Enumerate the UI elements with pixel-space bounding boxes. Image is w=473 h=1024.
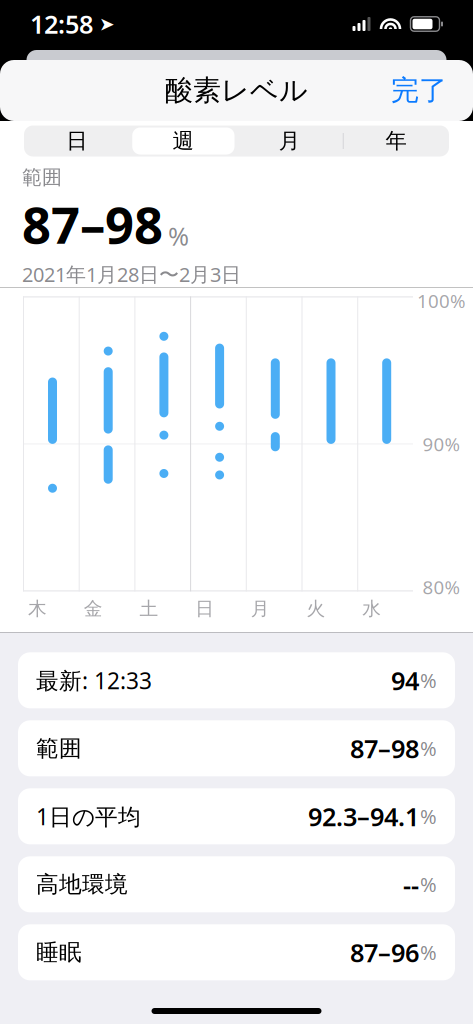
staticText: % bbox=[420, 667, 437, 694]
staticText: 日 bbox=[195, 597, 214, 620]
staticText: 木 bbox=[28, 597, 47, 620]
button[interactable]: 週 bbox=[130, 125, 236, 156]
staticText: 100% bbox=[417, 288, 466, 313]
staticText: 範囲 bbox=[36, 734, 82, 762]
button[interactable]: 日 bbox=[24, 125, 130, 156]
staticText: 年 bbox=[385, 128, 406, 154]
staticText: 週 bbox=[172, 128, 193, 154]
button[interactable]: 月 bbox=[236, 125, 343, 156]
button[interactable]: 完了 bbox=[375, 63, 463, 118]
button[interactable]: 高地環境 bbox=[18, 856, 455, 912]
staticText: 金 bbox=[84, 597, 103, 620]
staticText: 火 bbox=[307, 597, 326, 620]
staticText: 92.3–94.1 bbox=[308, 799, 419, 833]
staticText: % bbox=[168, 219, 189, 253]
staticText: 土 bbox=[139, 597, 158, 620]
button[interactable]: 1日の平均 bbox=[18, 788, 455, 844]
staticText: 日 bbox=[66, 128, 87, 154]
button[interactable]: 最新: 12:33 bbox=[18, 652, 455, 708]
staticText: -- bbox=[403, 867, 419, 901]
button[interactable]: 睡眠 bbox=[18, 924, 455, 980]
staticText: 87–98 bbox=[22, 191, 163, 258]
staticText: % bbox=[420, 871, 437, 898]
staticText: ➤ bbox=[93, 13, 115, 35]
staticText: 87–96 bbox=[350, 935, 419, 969]
staticText: 94 bbox=[391, 663, 419, 697]
staticText: 睡眠 bbox=[36, 938, 82, 966]
staticText: 月 bbox=[279, 128, 300, 154]
staticText: 高地環境 bbox=[36, 870, 128, 898]
staticText: % bbox=[420, 939, 437, 966]
staticText: 最新: 12:33 bbox=[36, 665, 152, 695]
staticText: 完了 bbox=[391, 73, 447, 108]
button[interactable]: 範囲 bbox=[18, 720, 455, 776]
staticText: 87–98 bbox=[350, 731, 419, 765]
staticText: 月 bbox=[251, 597, 270, 620]
staticText: 酸素レベル bbox=[165, 73, 308, 108]
staticText: 12:58 bbox=[30, 7, 93, 41]
staticText: 2021年1月28日〜2月3日 bbox=[22, 261, 241, 287]
staticText: 範囲 bbox=[22, 165, 62, 190]
staticText: % bbox=[420, 735, 437, 762]
staticText: 水 bbox=[362, 597, 381, 620]
staticText: 90% bbox=[422, 431, 460, 456]
staticText: 1日の平均 bbox=[36, 801, 141, 831]
button[interactable]: 年 bbox=[343, 125, 449, 156]
staticText: 80% bbox=[422, 575, 460, 599]
staticText: % bbox=[420, 803, 437, 830]
